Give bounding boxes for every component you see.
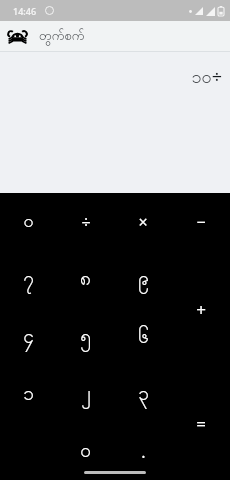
button[interactable]: Clear bbox=[0, 193, 57, 251]
staticText: ဝ bbox=[23, 209, 34, 236]
staticText: ၂ bbox=[81, 381, 91, 409]
staticText: ၉ bbox=[138, 266, 149, 294]
staticText: ၁၀÷ bbox=[191, 64, 222, 92]
staticText: × bbox=[138, 211, 148, 233]
button[interactable]: ၂ bbox=[57, 366, 114, 423]
button[interactable]: ၇ bbox=[0, 251, 57, 309]
staticText: ÷ bbox=[81, 211, 91, 233]
button[interactable]: Minus bbox=[172, 193, 230, 251]
button[interactable]: ၅ bbox=[57, 309, 114, 366]
button[interactable]: ၆ bbox=[114, 309, 172, 366]
button[interactable]: ၉ bbox=[114, 251, 172, 309]
staticText: တွက်စက် bbox=[39, 27, 85, 46]
staticText: ၅ bbox=[80, 324, 91, 352]
staticText: ၀ bbox=[80, 438, 91, 466]
staticText: ၈ bbox=[80, 266, 91, 294]
button[interactable]: ၁ bbox=[0, 366, 57, 423]
staticText: 14:46 bbox=[13, 5, 37, 17]
button[interactable]: Multiply bbox=[114, 193, 172, 251]
staticText: . bbox=[141, 441, 146, 463]
staticText: ၆ bbox=[138, 324, 149, 352]
button[interactable]: ၄ bbox=[0, 309, 57, 366]
button[interactable]: Divide bbox=[57, 193, 114, 251]
staticText: ၄ bbox=[23, 324, 34, 352]
button[interactable]: ၈ bbox=[57, 251, 114, 309]
staticText: ၃ bbox=[138, 381, 149, 409]
button[interactable]: Equals bbox=[172, 366, 230, 423]
staticText: ၇ bbox=[23, 266, 34, 294]
staticText: = bbox=[196, 412, 206, 435]
other: Calculator bbox=[7, 21, 230, 51]
other: App icon bbox=[7, 26, 28, 47]
button[interactable]: ၃ bbox=[114, 366, 172, 423]
staticText: − bbox=[196, 211, 206, 233]
staticText: ၁ bbox=[23, 381, 34, 409]
button[interactable]: ၀ bbox=[57, 423, 114, 480]
staticText: + bbox=[196, 298, 206, 321]
button[interactable]: Plus bbox=[172, 251, 230, 309]
button[interactable]: Decimal point bbox=[114, 423, 172, 480]
